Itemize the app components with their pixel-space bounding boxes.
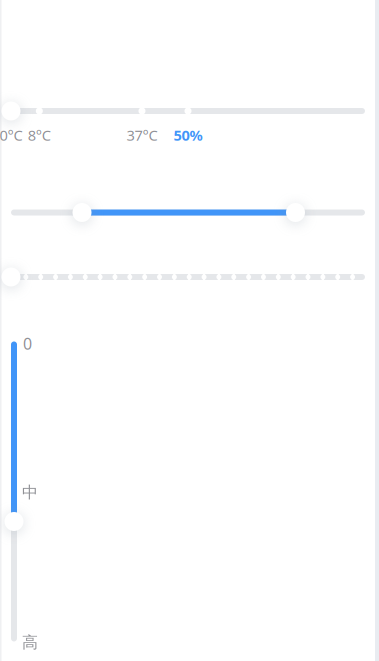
button[interactable]: Dashed slider (0, 0, 379, 661)
staticText: 8°C (28, 125, 51, 145)
staticText: 高 (22, 633, 38, 652)
button[interactable]: Temperature slider (0, 0, 379, 661)
staticText: 中 (22, 483, 38, 502)
button[interactable]: Vertical slider (0, 0, 379, 661)
staticText: 0°C (0, 125, 22, 145)
staticText: 50% (173, 125, 202, 145)
button[interactable]: Range slider (0, 0, 379, 661)
staticText: 0 (23, 333, 32, 354)
staticText: 37°C (126, 125, 157, 145)
